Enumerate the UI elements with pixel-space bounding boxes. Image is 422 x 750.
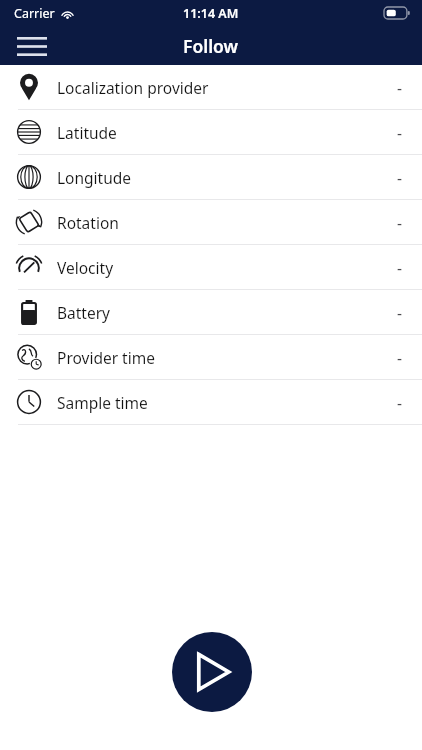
staticText: Localization provider (57, 77, 209, 98)
staticText: - (397, 392, 402, 413)
staticText: - (397, 347, 402, 368)
staticText: - (397, 212, 402, 233)
staticText: Longitude (57, 167, 132, 188)
staticText: Velocity (57, 257, 114, 278)
staticText: Provider time (57, 347, 155, 368)
staticText: Sample time (57, 392, 148, 413)
button[interactable]: Rotation (0, 200, 422, 244)
staticText: - (397, 257, 402, 278)
staticText: Latitude (57, 122, 117, 143)
staticText: - (397, 167, 402, 188)
staticText: 11:14 AM (183, 5, 239, 22)
button[interactable]: Localization provider (0, 65, 422, 109)
staticText: - (397, 122, 402, 143)
staticText: - (397, 302, 402, 323)
staticText: - (397, 77, 402, 98)
button[interactable]: Velocity (0, 245, 422, 289)
staticText: Rotation (57, 212, 119, 233)
staticText: Carrier (14, 5, 55, 22)
button[interactable]: Latitude (0, 110, 422, 154)
button[interactable]: Start (172, 632, 252, 712)
button[interactable]: Provider time (0, 335, 422, 379)
staticText: Battery (57, 302, 111, 323)
button[interactable]: Sample time (0, 380, 422, 424)
button[interactable]: Longitude (0, 155, 422, 199)
button[interactable]: Menu (10, 28, 54, 64)
staticText: Follow (183, 34, 239, 58)
button[interactable]: Battery (0, 290, 422, 334)
